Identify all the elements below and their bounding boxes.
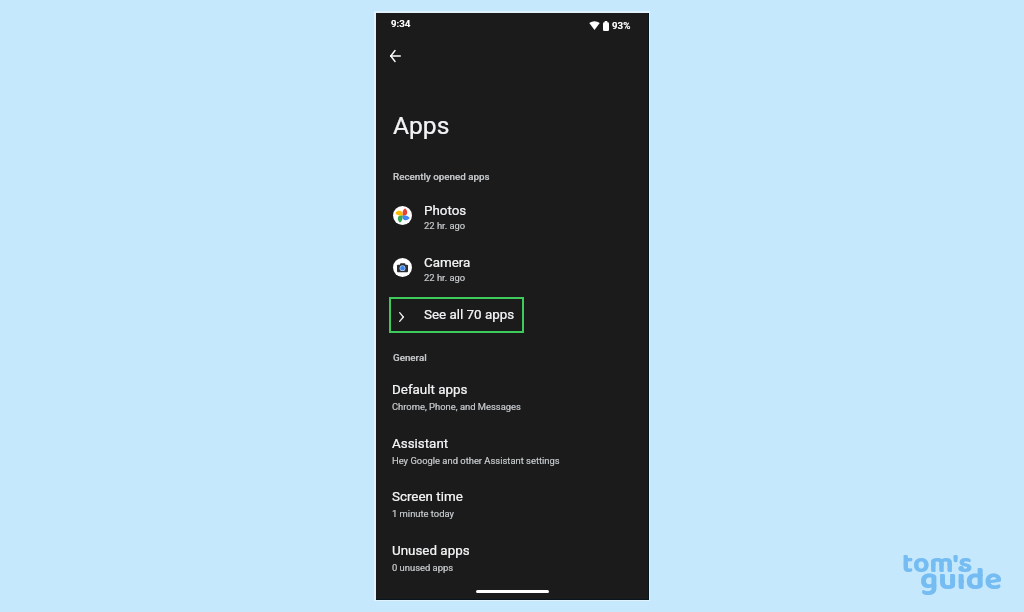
staticText: See all 70 apps — [424, 307, 515, 323]
button[interactable]: Assistant — [376, 426, 648, 474]
button[interactable]: Camera — [376, 248, 648, 293]
button[interactable]: See all 70 apps — [389, 297, 524, 333]
staticText: Photos — [424, 203, 467, 219]
staticText: General — [393, 352, 427, 363]
staticText: Assistant — [392, 436, 449, 452]
staticText: Default apps — [392, 382, 468, 398]
staticText: 9:34 — [391, 18, 411, 29]
staticText: guide — [920, 554, 1002, 606]
staticText: tom's — [902, 541, 973, 587]
staticText: 93% — [612, 20, 631, 31]
staticText: 1 minute today — [392, 508, 454, 519]
staticText: Apps — [393, 111, 450, 140]
staticText: Camera — [424, 255, 471, 271]
staticText: Recently opened apps — [393, 171, 490, 182]
button[interactable]: Screen time — [376, 479, 648, 527]
staticText: Unused apps — [392, 543, 470, 559]
button[interactable]: Unused apps — [376, 533, 648, 581]
staticText: 22 hr. ago — [424, 272, 466, 283]
staticText: 22 hr. ago — [424, 220, 466, 231]
staticText: Chrome, Phone, and Messages — [392, 401, 521, 412]
staticText: Screen time — [392, 489, 463, 505]
staticText: Hey Google and other Assistant settings — [392, 455, 560, 466]
staticText: 0 unused apps — [392, 562, 454, 573]
button[interactable]: Photos — [376, 196, 648, 241]
button[interactable]: Default apps — [376, 372, 648, 420]
button[interactable]: Back — [381, 42, 409, 70]
